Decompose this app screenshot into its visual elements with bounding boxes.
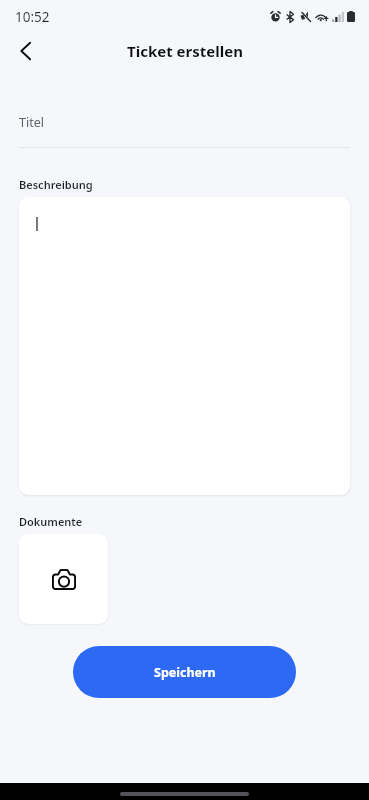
staticText: Speichern <box>154 664 216 681</box>
button[interactable]: Foto aufnehmen <box>19 534 108 624</box>
staticText: Dokumente <box>19 514 83 529</box>
button[interactable]: Speichern <box>73 646 296 698</box>
staticText: Beschreibung <box>19 177 93 192</box>
staticText: Ticket erstellen <box>127 41 243 61</box>
staticText: Titel <box>19 114 44 131</box>
staticText: 10:52 <box>15 8 50 26</box>
button[interactable]: Zurück <box>6 32 44 70</box>
